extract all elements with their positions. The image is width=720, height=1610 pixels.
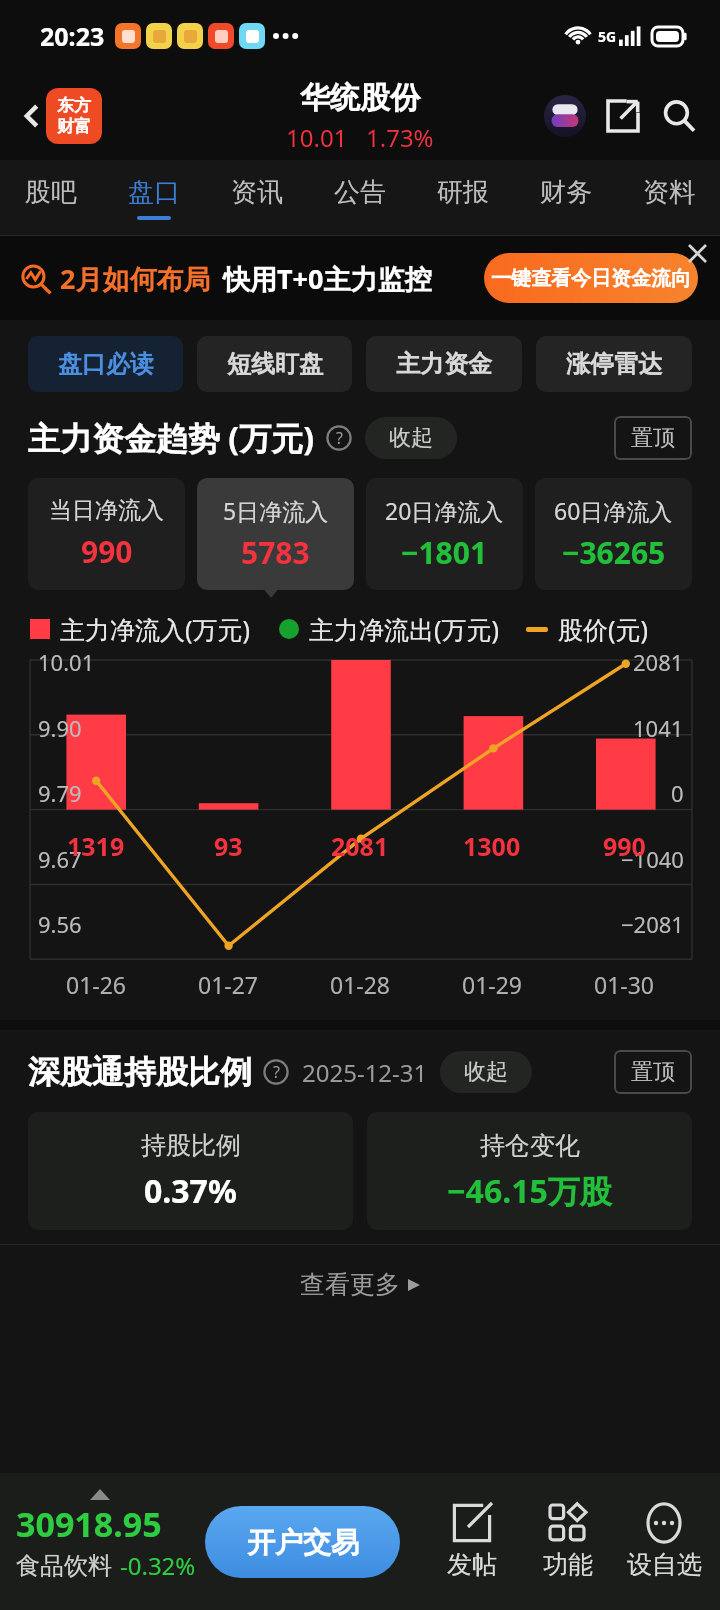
staticText: 9.79 (38, 778, 82, 808)
button[interactable]: 分享 (600, 93, 646, 139)
staticText: 0 (671, 778, 684, 808)
button[interactable]: 财务 (514, 160, 617, 236)
staticText: 主力净流入(万元) (60, 612, 251, 646)
staticText: 当日净流入 (49, 496, 164, 525)
staticText: 2月如何布局 (60, 260, 211, 297)
staticText: 收起 (389, 424, 433, 452)
button[interactable]: 说明 (325, 424, 353, 452)
staticText: 资料 (643, 176, 695, 209)
staticText: 2081 (331, 829, 389, 863)
staticText: 盘口必读 (58, 349, 154, 379)
staticText: 收起 (464, 1058, 508, 1086)
staticText: 20日净流入 (385, 495, 504, 526)
button[interactable]: 收起 (365, 417, 457, 459)
button[interactable]: 说明 (262, 1058, 290, 1086)
staticText: 华统股份 (300, 79, 420, 117)
button[interactable]: 置顶 (614, 1050, 692, 1094)
button[interactable]: 涨停雷达 (536, 336, 692, 392)
button[interactable]: 置顶 (614, 416, 692, 460)
staticText: 0.37% (144, 1169, 237, 1213)
button[interactable]: 公告 (308, 160, 411, 236)
staticText: 01-30 (594, 969, 655, 1000)
button[interactable]: 5日净流入 (197, 478, 354, 590)
staticText: -0.32% (120, 1549, 196, 1582)
staticText: −2081 (621, 909, 684, 939)
staticText: 涨停雷达 (566, 349, 662, 379)
staticText: 财富 (57, 116, 91, 137)
button[interactable]: 功能 (520, 1473, 616, 1610)
button[interactable]: 主力资金 (366, 336, 522, 392)
staticText: 60日净流入 (554, 495, 673, 526)
button[interactable]: 资讯 (205, 160, 308, 236)
button[interactable]: 关闭 (680, 236, 714, 270)
staticText: 1041 (633, 713, 684, 743)
staticText: 股价(元) (558, 612, 649, 646)
button[interactable]: 20日净流入 (366, 478, 523, 590)
staticText: 主力净流出(万元) (309, 612, 500, 646)
staticText: 功能 (543, 1549, 593, 1580)
staticText: 快用T+0主力监控 (223, 260, 432, 297)
staticText: 01-26 (66, 969, 127, 1000)
button[interactable]: 持仓变化 (367, 1112, 692, 1230)
staticText: 股吧 (25, 176, 77, 209)
button[interactable]: 搜索 (656, 93, 702, 139)
staticText: 研报 (437, 176, 489, 209)
button[interactable]: 研报 (411, 160, 514, 236)
staticText: 10.01 (38, 647, 95, 677)
staticText: 1300 (463, 829, 521, 863)
button[interactable]: 一键查看今日资金流向 (484, 253, 698, 303)
staticText: −46.15万股 (447, 1169, 612, 1213)
staticText: 设自选 (627, 1549, 702, 1580)
staticText: 5G (598, 27, 617, 46)
staticText: 一键查看今日资金流向 (491, 266, 691, 291)
staticText: 资讯 (231, 176, 283, 209)
button[interactable]: 查看更多 (0, 1245, 720, 1323)
staticText: −1040 (621, 844, 684, 874)
staticText: 5日净流入 (223, 495, 329, 526)
button[interactable]: 资料 (617, 160, 720, 236)
button[interactable]: 当日净流入 (28, 478, 185, 590)
staticText: 9.56 (38, 909, 82, 939)
button[interactable]: 盘口必读 (28, 336, 183, 392)
staticText: 01-27 (198, 969, 259, 1000)
staticText: 990 (603, 829, 646, 863)
button[interactable]: 收起 (440, 1051, 532, 1093)
staticText: −1801 (401, 532, 488, 573)
button[interactable]: 返回 (8, 92, 56, 140)
staticText: 持仓变化 (480, 1130, 580, 1161)
staticText: 主力资金趋势 (万元) (28, 416, 315, 460)
staticText: 公告 (334, 176, 386, 209)
button[interactable]: 持股比例 (28, 1112, 353, 1230)
staticText: 20:23 (40, 19, 105, 53)
button[interactable]: 设自选 (616, 1473, 712, 1610)
staticText: 01-28 (330, 969, 391, 1000)
staticText: 1319 (67, 829, 125, 863)
button[interactable]: 盘口 (102, 160, 205, 236)
staticText: 置顶 (631, 1058, 675, 1086)
button[interactable]: 东方财富 (46, 88, 102, 144)
staticText: 9.67 (38, 844, 82, 874)
staticText: 查看更多 (300, 1269, 400, 1300)
button[interactable]: 开户交易 (205, 1506, 400, 1578)
staticText: 发帖 (447, 1549, 497, 1580)
staticText: 10.01 (286, 121, 348, 154)
staticText: 主力资金 (396, 349, 492, 379)
button[interactable]: 股吧 (0, 160, 102, 236)
staticText: 01-29 (462, 969, 523, 1000)
staticText: −36265 (562, 532, 666, 573)
button[interactable]: AI助手 (542, 93, 588, 139)
staticText: 置顶 (631, 424, 675, 452)
staticText: 2081 (633, 647, 684, 677)
staticText: 93 (214, 829, 243, 863)
staticText: 深股通持股比例 (28, 1052, 252, 1092)
button[interactable]: 60日净流入 (535, 478, 692, 590)
staticText: 食品饮料 (16, 1551, 112, 1581)
staticText: 30918.95 (16, 1501, 162, 1547)
button[interactable]: 发帖 (424, 1473, 520, 1610)
staticText: 2025-12-31 (302, 1056, 428, 1089)
staticText: ? (336, 427, 343, 449)
button[interactable]: 短线盯盘 (197, 336, 352, 392)
staticText: 持股比例 (141, 1130, 241, 1161)
staticText: 财务 (540, 176, 592, 209)
staticText: 开户交易 (247, 1525, 359, 1560)
